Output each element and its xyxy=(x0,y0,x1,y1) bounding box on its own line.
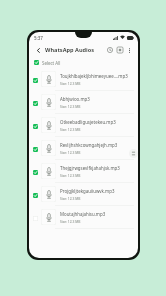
button[interactable]: Otkeebadligusjetekeu.mp3 xyxy=(29,114,138,136)
staticText: Otkeebadligusjetekeu.mp3 xyxy=(60,119,116,125)
staticText: Size: 12.3 MB xyxy=(60,196,81,200)
staticText: Size: 12.3 MB xyxy=(60,219,81,223)
staticText: Toujkhlbajekljbhimeeyuee....mp3 xyxy=(60,73,128,79)
staticText: Select All xyxy=(42,60,61,66)
staticText: Size: 12.3 MB xyxy=(60,173,81,177)
staticText: Size: 12.3 MB xyxy=(60,150,81,154)
button[interactable]: Projgjkljtekgauiiuwvk.mp3 xyxy=(29,183,138,205)
staticText: Revlijhshkcowngahjejh.mp3 xyxy=(60,142,118,148)
button[interactable]: More options xyxy=(125,46,134,55)
staticText: WhatsApp Audios xyxy=(45,46,95,54)
button[interactable]: Sort xyxy=(105,45,115,55)
button[interactable]: Back xyxy=(33,45,43,55)
button[interactable]: Abhjwioo.mp3 xyxy=(29,91,138,113)
staticText: Size: 12.3 MB xyxy=(60,127,81,131)
staticText: Size: 12.3 MB xyxy=(60,104,81,108)
staticText: Thejgjrwgsevlfkjahahjsk.mp3 xyxy=(60,165,120,171)
button[interactable]: Thejgjrwgsevlfkjahahjsk.mp3 xyxy=(29,160,138,182)
button[interactable]: Toujkhlbajekljbhimeeyuee....mp3 xyxy=(29,68,138,90)
button[interactable]: Select All xyxy=(29,57,138,68)
staticText: Abhjwioo.mp3 xyxy=(60,96,90,102)
staticText: Size: 12.3 MB xyxy=(60,81,81,85)
button[interactable]: Revlijhshkcowngahjejh.mp3 xyxy=(29,137,138,159)
staticText: 5:37 xyxy=(34,35,43,41)
staticText: Moutajhhajahisu.mp3 xyxy=(60,211,106,217)
staticText: Projgjkljtekgauiiuwvk.mp3 xyxy=(60,188,115,194)
button[interactable]: Moutajhhajahisu.mp3 xyxy=(29,206,138,228)
button[interactable]: Layout xyxy=(115,45,125,55)
other: Scroll xyxy=(129,149,138,158)
